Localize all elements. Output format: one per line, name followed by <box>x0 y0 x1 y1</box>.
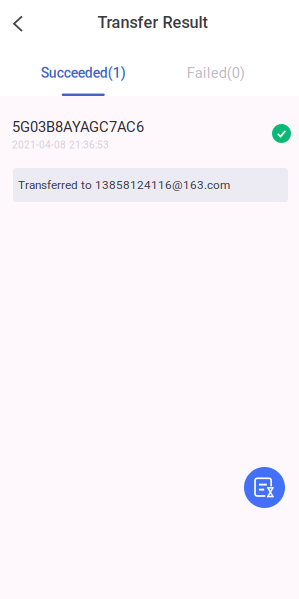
button[interactable]: Back <box>0 4 36 40</box>
staticText: Transfer Result <box>97 13 207 32</box>
staticText: Succeeded(1) <box>41 65 126 81</box>
staticText: Failed(0) <box>187 64 245 82</box>
button[interactable]: Failed(0) <box>149 45 282 96</box>
button[interactable]: Pending transfers <box>244 467 285 508</box>
staticText: Transferred to 13858124116@163.com <box>18 178 230 192</box>
button[interactable]: Succeeded(1) <box>17 45 149 96</box>
staticText: 2021-04-08 21:36:53 <box>12 139 109 151</box>
staticText: 5G03B8AYAGC7AC6 <box>12 118 144 136</box>
